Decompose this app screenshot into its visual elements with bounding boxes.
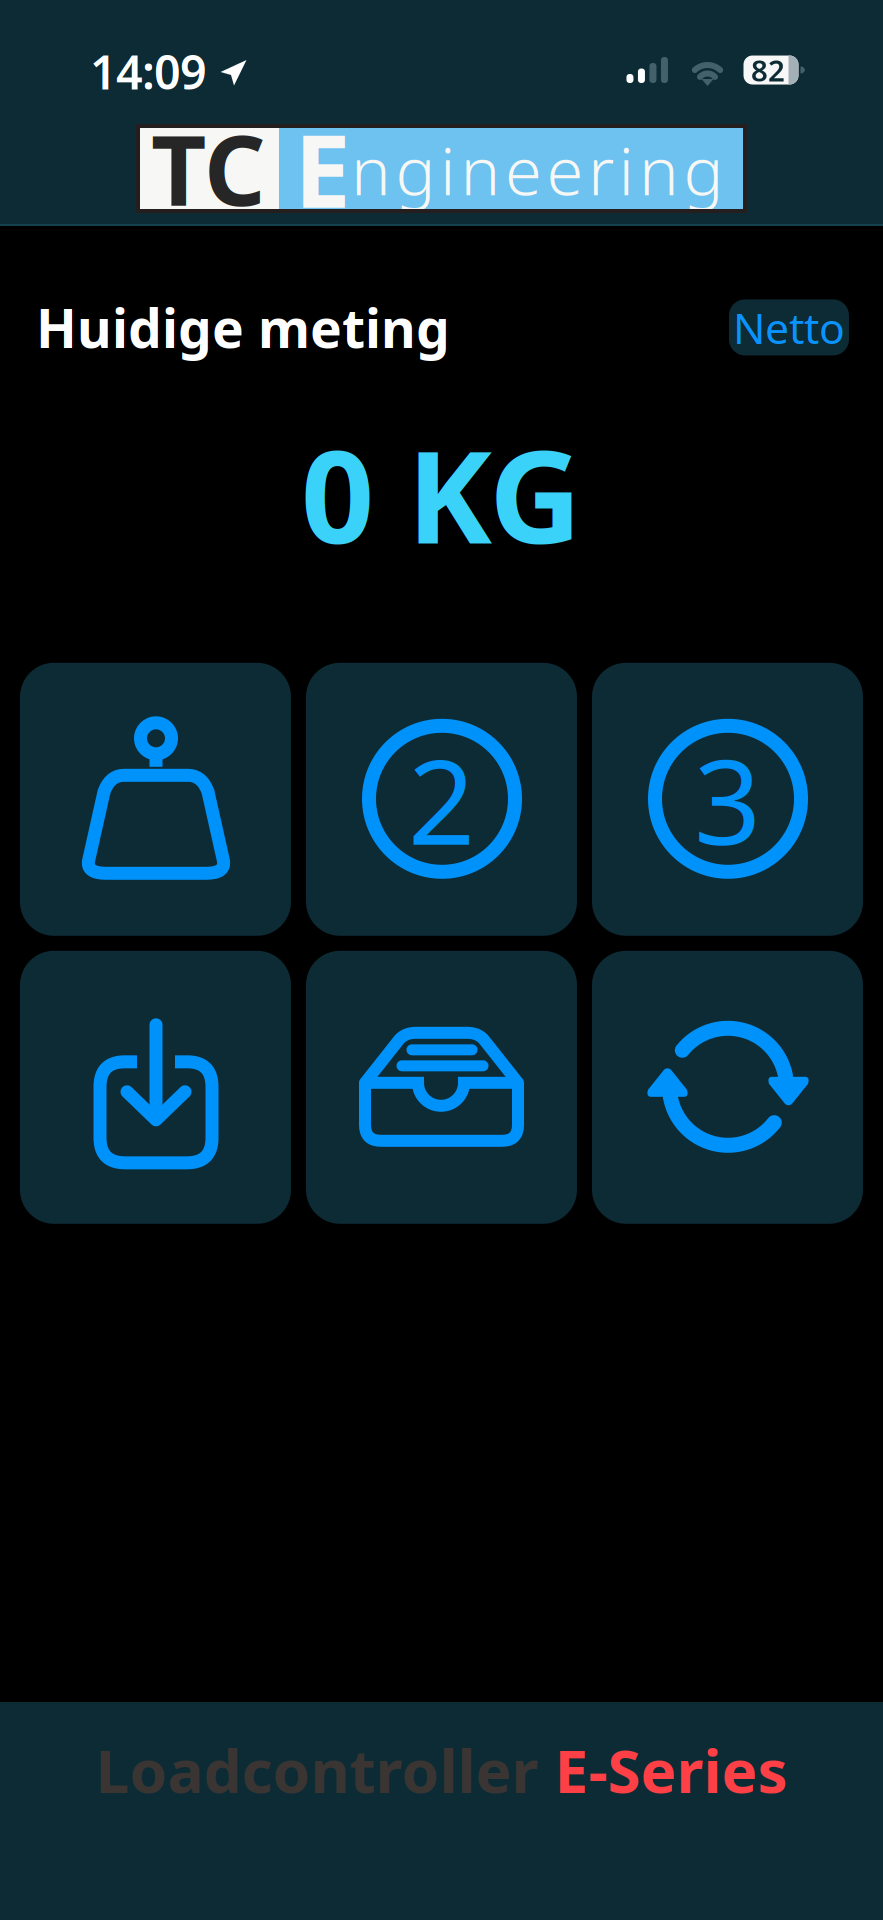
button[interactable]: Weight [20, 663, 291, 936]
button[interactable]: Channel 2 [306, 663, 577, 936]
staticText: TC [151, 105, 266, 232]
staticText: Netto [733, 299, 845, 356]
button[interactable]: Archive [306, 951, 577, 1224]
button[interactable]: Netto [729, 299, 849, 355]
staticText: 0 KG [301, 409, 582, 579]
staticText: Huidige meting [36, 292, 450, 363]
staticText: E-Series [554, 1730, 787, 1810]
button[interactable]: Save [20, 951, 291, 1224]
staticText: Loadcontroller [95, 1730, 554, 1810]
staticText: 2 [408, 721, 475, 877]
staticText: ngineering [351, 125, 723, 214]
staticText: 14:09 [90, 40, 207, 102]
staticText: E [294, 101, 351, 236]
staticText: 3 [694, 721, 761, 877]
button[interactable]: Refresh [592, 951, 863, 1224]
staticText: 82 [751, 50, 785, 89]
button[interactable]: Channel 3 [592, 663, 863, 936]
